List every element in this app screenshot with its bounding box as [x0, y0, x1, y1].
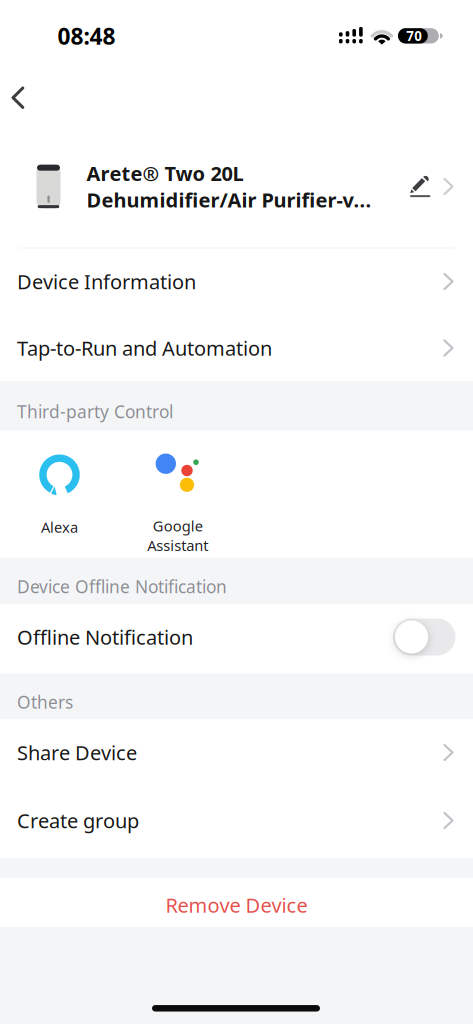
staticText: Third-party Control — [17, 400, 173, 423]
button[interactable]: Create group — [0, 787, 473, 854]
staticText: Google Assistant — [147, 516, 208, 555]
staticText: Arete® Two 20L Dehumidifier/Air Purifier… — [86, 160, 371, 213]
staticText: Others — [17, 690, 73, 713]
staticText: 70 — [406, 27, 422, 45]
staticText: Device Information — [17, 268, 196, 295]
button[interactable]: Device Information — [0, 248, 473, 315]
staticText: Create group — [17, 807, 139, 834]
staticText: 08:48 — [57, 21, 115, 51]
staticText: Alexa — [41, 517, 78, 537]
staticText: Share Device — [17, 739, 137, 766]
staticText: Device Offline Notification — [17, 575, 227, 598]
staticText: Offline Notification — [17, 624, 193, 650]
button[interactable]: Tap-to-Run and Automation — [0, 315, 473, 381]
staticText: Tap-to-Run and Automation — [17, 335, 272, 361]
button[interactable]: Back — [3, 78, 33, 117]
button[interactable]: Share Device — [0, 719, 473, 786]
button[interactable]: Offline Notification — [393, 618, 455, 655]
button[interactable]: Arete® Two 20L Dehumidifier/Air Purifier… — [0, 140, 473, 232]
button[interactable]: Google Assistant — [147, 447, 208, 555]
staticText: Remove Device — [165, 892, 307, 918]
button[interactable]: Alexa — [39, 454, 80, 537]
button[interactable]: Remove Device — [0, 878, 473, 927]
